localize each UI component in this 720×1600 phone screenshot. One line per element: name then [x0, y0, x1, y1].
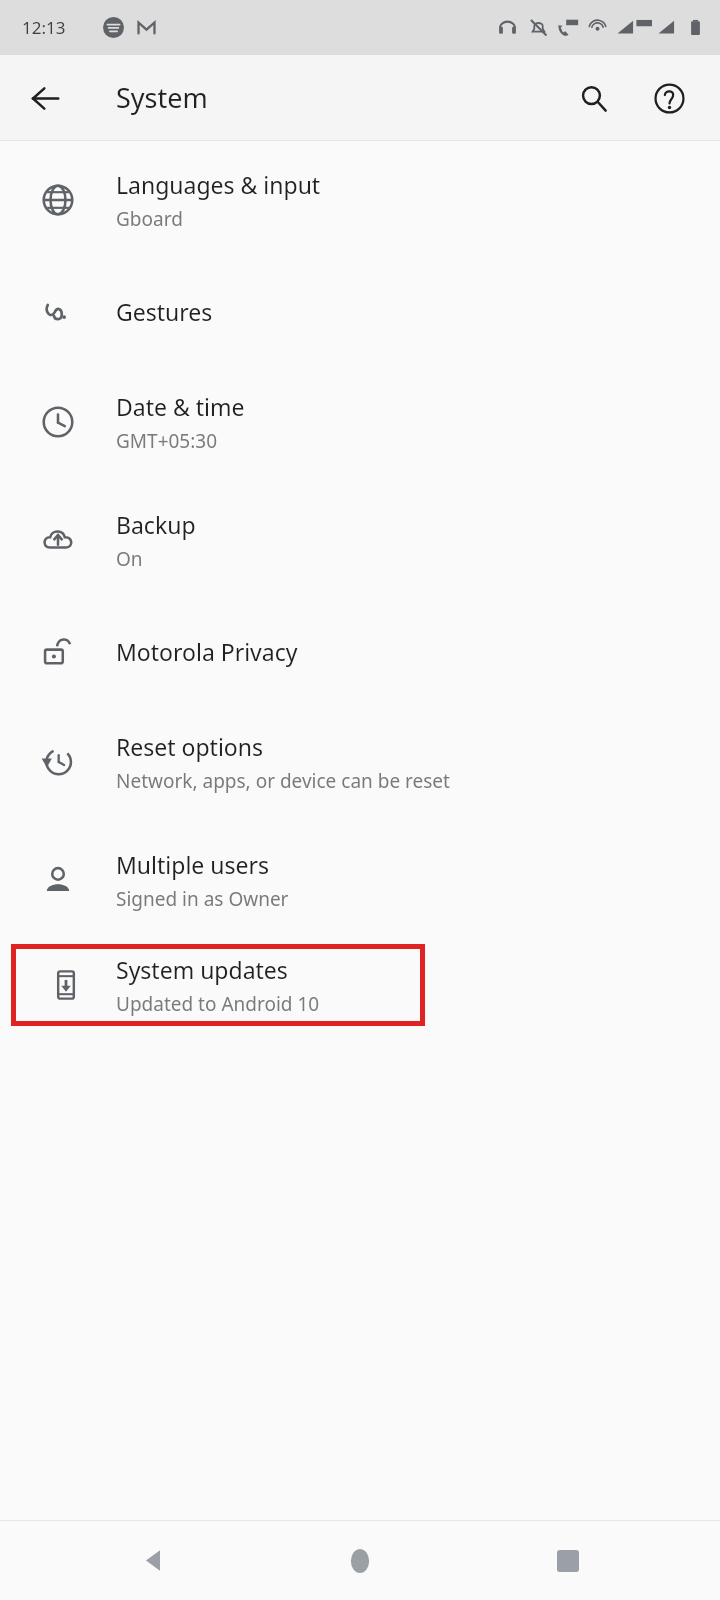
staticText: On: [116, 546, 143, 572]
staticText: Reset options: [116, 731, 263, 762]
staticText: 12:13: [22, 16, 66, 39]
button[interactable]: Help: [640, 69, 698, 127]
staticText: GMT+05:30: [116, 428, 218, 454]
button[interactable]: Languages & input: [0, 141, 720, 259]
button[interactable]: Gestures: [0, 259, 720, 363]
button[interactable]: Back: [16, 69, 74, 127]
staticText: Languages & input: [116, 169, 321, 200]
staticText: Date & time: [116, 391, 245, 422]
staticText: Gboard: [116, 206, 183, 232]
button[interactable]: Multiple users: [0, 821, 720, 939]
button[interactable]: Backup: [0, 481, 720, 599]
staticText: Network, apps, or device can be reset: [116, 768, 450, 794]
button[interactable]: Motorola Privacy: [0, 599, 720, 703]
staticText: Motorola Privacy: [116, 636, 298, 667]
staticText: Updated to Android 10: [116, 991, 320, 1017]
button[interactable]: Home: [305, 1521, 415, 1600]
button[interactable]: Reset options: [0, 703, 720, 821]
staticText: Backup: [116, 509, 196, 540]
button[interactable]: Date & time: [0, 363, 720, 481]
staticText: System updates: [116, 954, 288, 985]
button[interactable]: System updates: [16, 949, 420, 1021]
staticText: Signed in as Owner: [116, 886, 289, 912]
staticText: Multiple users: [116, 849, 269, 880]
staticText: Gestures: [116, 296, 213, 327]
button[interactable]: Recent apps: [513, 1521, 623, 1600]
button[interactable]: Search: [564, 69, 622, 127]
button[interactable]: Back: [98, 1521, 208, 1600]
staticText: System: [116, 79, 208, 116]
